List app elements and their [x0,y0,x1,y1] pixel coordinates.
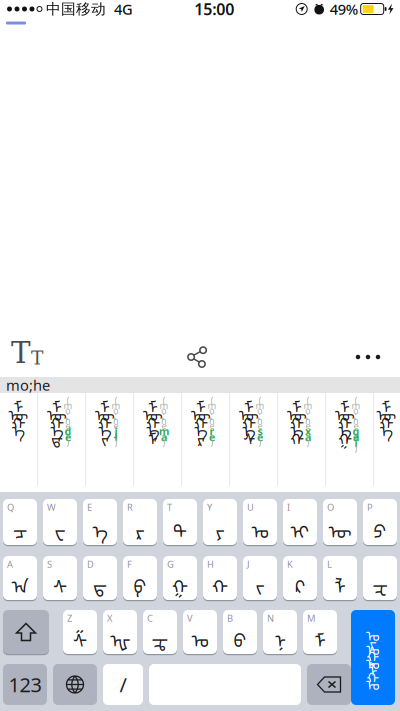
staticText: ᠬ [212,567,228,599]
button[interactable]: ᠮ [38,393,85,486]
staticText: 中国移动 [46,0,106,18]
staticText: ) [210,436,213,449]
button[interactable]: Z [63,610,97,655]
button[interactable]: T [163,499,197,546]
staticText: ᠮ [381,390,391,418]
staticText: ᠡ [242,414,255,442]
staticText: ᠬ [11,406,25,434]
button[interactable]: Share [174,337,220,377]
button[interactable]: Return [351,610,395,705]
button[interactable]: W [43,499,77,546]
button[interactable]: I [283,499,317,546]
button[interactable]: V [183,610,217,655]
staticText: ᠥ [376,398,396,426]
staticText: e [257,419,262,432]
staticText: ( [162,394,165,407]
staticText: h [305,414,311,427]
button[interactable]: ᠮ [182,393,229,486]
button[interactable]: Text size [4,337,50,377]
button[interactable]: P [363,499,397,546]
button[interactable]: L [323,556,357,601]
button[interactable]: X [103,610,137,655]
staticText: ᠤ [366,669,380,695]
button[interactable]: Q [3,499,37,546]
staticText: o [161,404,167,417]
staticText: m [207,399,216,412]
staticText: ᠷ [369,627,376,653]
staticText: mo;he [6,375,50,395]
staticText: ᠾ [109,621,130,653]
staticText: h [113,414,119,427]
staticText: ( [210,394,213,407]
staticText: ᠹ [133,567,146,599]
staticText: ᠮ [244,390,254,418]
staticText: ᠬ [379,406,393,434]
staticText: ᠭ [366,641,379,667]
staticText: g [352,424,359,438]
button[interactable]: ᠮ [86,393,133,486]
button[interactable]: ᠮ [326,393,373,486]
button[interactable]: F [123,556,157,601]
button[interactable]: D [83,556,117,601]
button[interactable]: U [243,499,277,546]
staticText: ( [66,394,69,407]
staticText: j [114,424,117,438]
button[interactable]: G [163,556,197,601]
staticText: ᠬ [290,422,304,450]
staticText: X [107,612,112,624]
button[interactable]: ᠮ [134,393,181,486]
button[interactable]: K [283,556,317,601]
button[interactable]: O [323,499,357,546]
staticText: H [207,558,214,570]
button[interactable]: / [103,664,143,705]
staticText: o [209,404,215,417]
button[interactable]: Switch keyboard [53,664,97,705]
staticText: ᠶ [215,512,224,544]
staticText: L [327,558,332,570]
button[interactable]: Y [203,499,237,546]
staticText: ᠨ [274,621,285,653]
button[interactable]: H [203,556,237,601]
button[interactable]: ᠮ [374,393,399,486]
staticText: ᠣ [366,634,380,660]
button[interactable]: ᠮ [278,393,325,486]
button[interactable]: J [243,556,277,601]
staticText: ; [210,409,213,422]
button[interactable]: A [3,556,37,601]
staticText: ᠫ [373,512,386,544]
staticText: ᠡ [12,414,25,442]
button[interactable]: More [345,337,391,377]
button[interactable]: 123 [3,664,47,705]
staticText: h [353,414,359,427]
button[interactable]: M [303,610,337,655]
staticText: 15:00 [194,0,234,20]
staticText: ᠺ [295,567,305,599]
button[interactable]: N [263,610,297,655]
staticText: x [305,424,311,438]
staticText: ᠵ [255,567,264,599]
staticText: ᠯ [368,655,377,681]
staticText: T [167,501,172,513]
button[interactable]: ᠮ [230,393,277,486]
button[interactable]: E [83,499,117,546]
staticText: ) [354,442,357,455]
button[interactable]: B [223,610,257,655]
staticText: ᠬ [146,406,160,434]
staticText: ᠡ [380,414,393,442]
staticText: m [159,424,169,438]
staticText: ᠥ [328,512,351,544]
button[interactable]: C [143,610,177,655]
staticText: J [247,558,250,570]
button[interactable]: Shift [3,610,49,655]
button[interactable]: ᠮ [0,393,37,486]
button[interactable] [363,556,397,601]
button[interactable]: R [123,499,157,546]
button[interactable]: Delete [307,664,351,705]
staticText: W [47,501,56,513]
button[interactable]: S [43,556,77,601]
staticText: ᠸ [54,512,65,544]
staticText: ᠢ [290,512,309,544]
staticText: ᠬ [194,406,208,434]
staticText: ᠬ [50,406,64,434]
